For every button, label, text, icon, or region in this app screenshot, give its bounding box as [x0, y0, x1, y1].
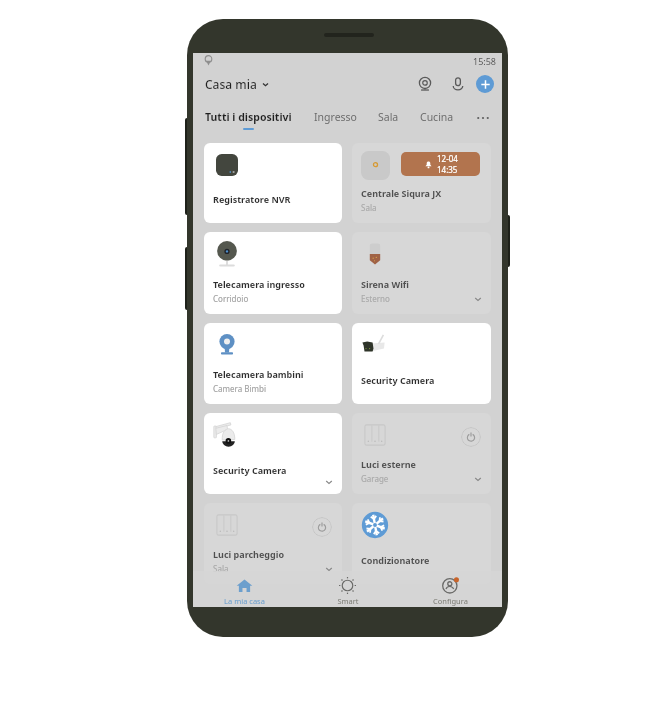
- button[interactable]: Sala: [378, 110, 399, 124]
- staticText: Cucina: [420, 110, 454, 124]
- button[interactable]: Power: [312, 517, 332, 537]
- button[interactable]: Registratore NVR: [204, 143, 342, 223]
- button[interactable]: Add device: [476, 75, 494, 93]
- staticText: Centrale Siqura JX: [361, 187, 442, 199]
- staticText: Luci parcheggio: [213, 548, 285, 560]
- staticText: Telecamera ingresso: [213, 278, 305, 290]
- button[interactable]: Configura: [399, 576, 502, 607]
- staticText: 15:58: [473, 55, 497, 67]
- staticText: Esterno: [361, 293, 390, 304]
- button[interactable]: Sirena Wifi: [352, 232, 491, 314]
- button[interactable]: Security Camera: [204, 413, 342, 494]
- staticText: Security Camera: [213, 464, 287, 476]
- staticText: 14:35: [437, 164, 458, 175]
- button[interactable]: Casa mia: [205, 76, 270, 92]
- staticText: Condizionatore: [361, 554, 430, 566]
- button[interactable]: Cucina: [420, 110, 454, 124]
- button[interactable]: Telecamera bambini: [204, 323, 342, 404]
- button[interactable]: Telecamera ingresso: [204, 232, 342, 314]
- button[interactable]: Power: [461, 427, 481, 447]
- button[interactable]: Voice: [446, 72, 470, 96]
- button[interactable]: Smart: [296, 576, 399, 607]
- button[interactable]: Condizionatore: [352, 503, 491, 584]
- button[interactable]: Ingresso: [314, 110, 357, 124]
- staticText: Ingresso: [314, 110, 357, 124]
- staticText: Sala: [213, 563, 229, 574]
- button[interactable]: Tutti i dispositivi: [205, 110, 292, 130]
- button[interactable]: More: [475, 110, 491, 126]
- button[interactable]: 12-04: [352, 143, 491, 223]
- staticText: Configura: [433, 596, 468, 606]
- staticText: La mia casa: [224, 596, 265, 606]
- staticText: Sala: [378, 110, 399, 124]
- staticText: Sala: [361, 202, 377, 213]
- staticText: Corridoio: [213, 293, 249, 304]
- staticText: 12-04: [437, 153, 458, 164]
- staticText: Registratore NVR: [213, 193, 291, 205]
- staticText: Casa mia: [205, 76, 257, 92]
- button[interactable]: La mia casa: [193, 576, 296, 607]
- staticText: Telecamera bambini: [213, 368, 304, 380]
- button[interactable]: Power: [204, 503, 342, 584]
- staticText: Camera Bimbi: [213, 383, 266, 394]
- staticText: Sirena Wifi: [361, 278, 410, 290]
- button[interactable]: Camera: [413, 72, 437, 96]
- staticText: Smart: [337, 596, 359, 606]
- button[interactable]: Security Camera: [352, 323, 491, 404]
- staticText: Security Camera: [361, 374, 435, 386]
- button[interactable]: Power: [352, 413, 491, 494]
- staticText: Tutti i dispositivi: [205, 110, 292, 124]
- staticText: Luci esterne: [361, 458, 416, 470]
- staticText: Garage: [361, 473, 389, 484]
